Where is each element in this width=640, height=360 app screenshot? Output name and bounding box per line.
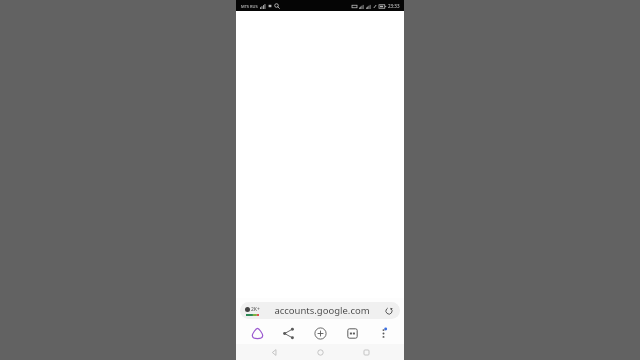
staticText: 2K+	[251, 306, 260, 313]
button[interactable]: Blocked trackers: 2K+	[245, 306, 260, 316]
button[interactable]: Recent apps	[358, 344, 374, 360]
staticText: accounts.google.com	[274, 304, 370, 317]
button[interactable]: Blocked trackers: 2K+	[240, 302, 400, 319]
button[interactable]: Back	[266, 344, 282, 360]
staticText: 23:33	[388, 3, 400, 9]
button[interactable]: Share	[277, 322, 299, 344]
button[interactable]: New tab	[309, 322, 331, 344]
button[interactable]: Home	[246, 322, 268, 344]
button[interactable]: Tabs	[341, 322, 363, 344]
staticText: MTS RUS	[241, 4, 258, 9]
button[interactable]: Home	[312, 344, 328, 360]
button[interactable]: More options	[372, 322, 394, 344]
button[interactable]: Reload page	[383, 305, 395, 317]
